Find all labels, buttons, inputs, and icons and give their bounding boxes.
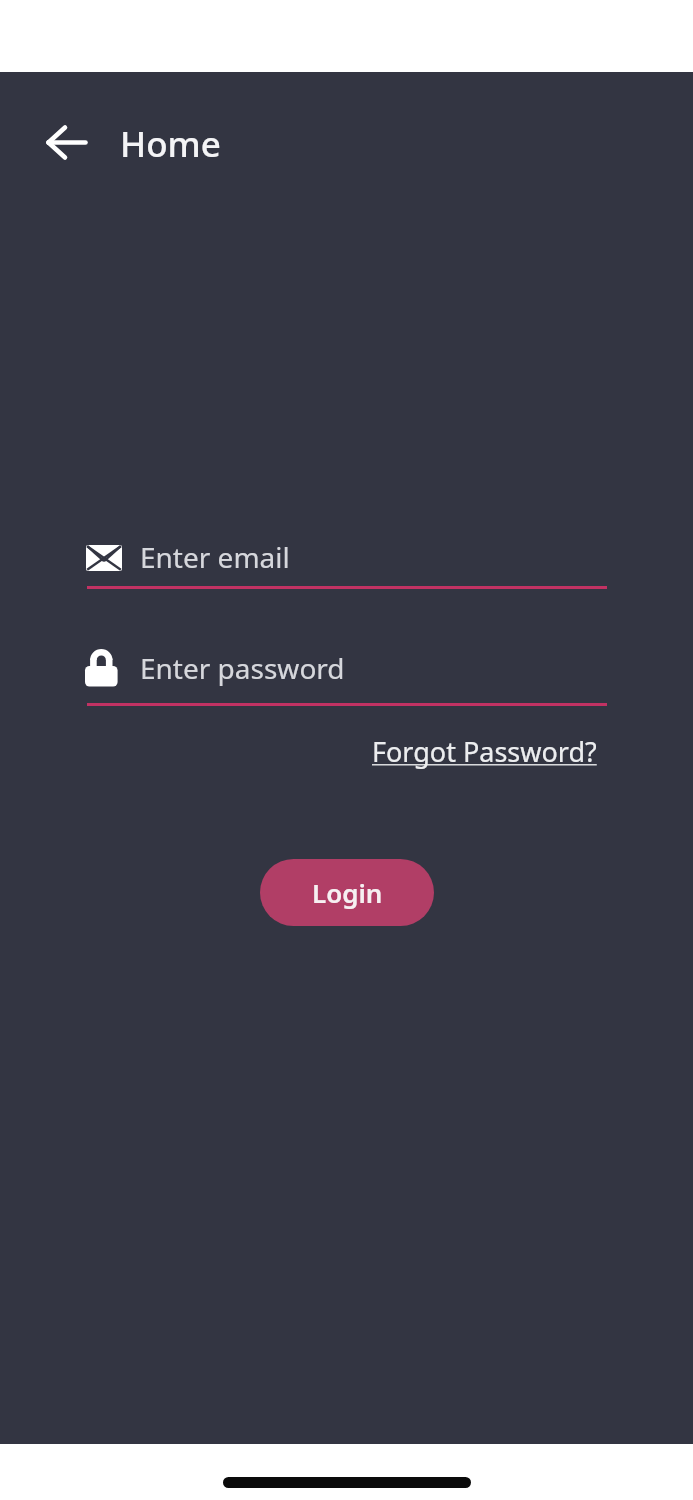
button[interactable]: Login (260, 859, 434, 926)
staticText: Enter password (140, 649, 345, 687)
button[interactable]: Forgot Password? (372, 733, 597, 770)
staticText: Enter email (140, 538, 290, 576)
staticText: Home (120, 120, 221, 168)
button[interactable] (46, 125, 88, 160)
staticText: Login (312, 875, 383, 910)
button[interactable]: Enter email (140, 532, 470, 582)
button[interactable]: Enter password (140, 643, 490, 693)
staticText: Forgot Password? (372, 733, 597, 770)
